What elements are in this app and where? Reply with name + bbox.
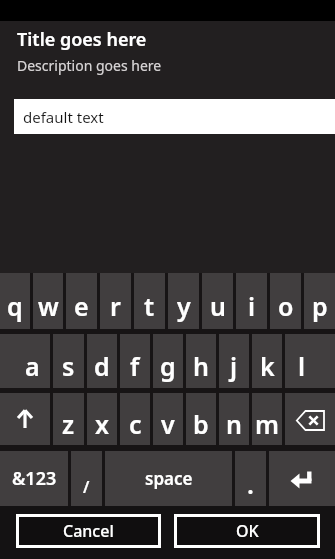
button[interactable]: r [100,273,131,329]
button[interactable]: g [153,334,183,388]
button[interactable] [0,393,50,445]
staticText: y [177,289,191,323]
button[interactable]: i [236,273,267,329]
staticText: n [226,407,242,441]
staticText: f [130,349,140,383]
button[interactable]: . [235,451,266,506]
button[interactable]: o [270,273,301,329]
button[interactable]: y [168,273,199,329]
staticText: o [278,289,294,323]
button[interactable]: &123 [0,451,68,506]
button[interactable]: Cancel [16,514,161,548]
staticText: u [210,289,226,323]
button[interactable]: q [0,273,30,329]
staticText: w [38,289,59,323]
button[interactable]: p [304,273,335,329]
staticText: b [193,407,209,441]
button[interactable]: e [66,273,97,329]
staticText: g [160,349,176,383]
staticText: x [95,407,110,441]
staticText: q [7,289,23,323]
button[interactable]: default text [14,99,335,134]
staticText: &123 [12,466,57,491]
staticText: m [255,407,280,441]
button[interactable]: a [0,334,50,388]
button[interactable]: d [87,334,117,388]
button[interactable]: space [105,451,232,506]
staticText: OK [236,520,259,542]
staticText: / [83,476,90,498]
staticText: l [298,349,306,383]
button[interactable]: w [33,273,63,329]
button[interactable]: m [252,393,282,445]
button[interactable]: x [87,393,117,445]
staticText: h [193,349,209,383]
button[interactable]: / [71,451,102,506]
button[interactable]: OK [174,514,320,548]
staticText: Cancel [63,520,114,542]
staticText: . [247,467,254,501]
staticText: t [144,289,155,323]
staticText: j [230,349,238,383]
button[interactable]: v [153,393,183,445]
staticText: z [62,407,75,441]
staticText: k [260,349,275,383]
staticText: s [62,349,75,383]
staticText: default text [23,107,104,127]
button[interactable]: h [186,334,216,388]
button[interactable]: f [120,334,150,388]
button[interactable]: s [53,334,84,388]
button[interactable]: k [252,334,282,388]
button[interactable] [285,393,335,445]
button[interactable]: n [219,393,249,445]
staticText: space [145,467,193,490]
staticText: r [110,289,121,323]
staticText: v [161,407,175,441]
staticText: c [129,407,142,441]
button[interactable]: j [219,334,249,388]
staticText: a [25,349,40,383]
staticText: Description goes here [17,56,162,75]
button[interactable]: z [53,393,84,445]
staticText: p [312,289,328,323]
staticText: d [94,349,110,383]
button[interactable] [269,451,335,506]
button[interactable]: c [120,393,150,445]
staticText: e [74,289,89,323]
staticText: Title goes here [17,27,147,52]
button[interactable]: b [186,393,216,445]
staticText: i [248,289,256,323]
button[interactable]: t [134,273,165,329]
button[interactable]: l [285,334,335,388]
button[interactable]: u [202,273,233,329]
